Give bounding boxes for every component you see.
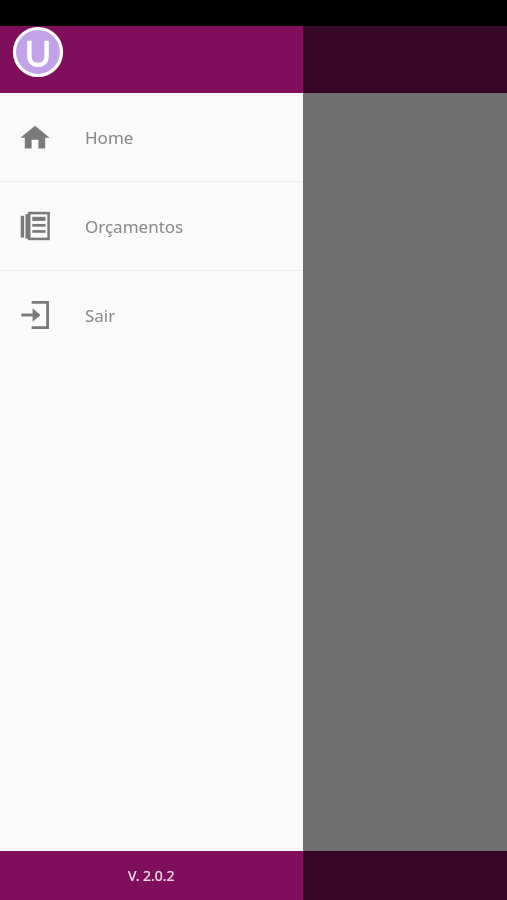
staticText: Sair [85, 304, 116, 327]
staticText: V. 2.0.2 [128, 866, 175, 885]
button[interactable]: Sair [0, 271, 303, 359]
button[interactable]: Home [0, 93, 303, 181]
staticText: Orçamentos [85, 215, 184, 238]
staticText: OLÁ, PAULO EVERALDO [18, 145, 212, 168]
button[interactable]: Orçamentos [0, 182, 303, 270]
staticText: Home [85, 126, 134, 149]
